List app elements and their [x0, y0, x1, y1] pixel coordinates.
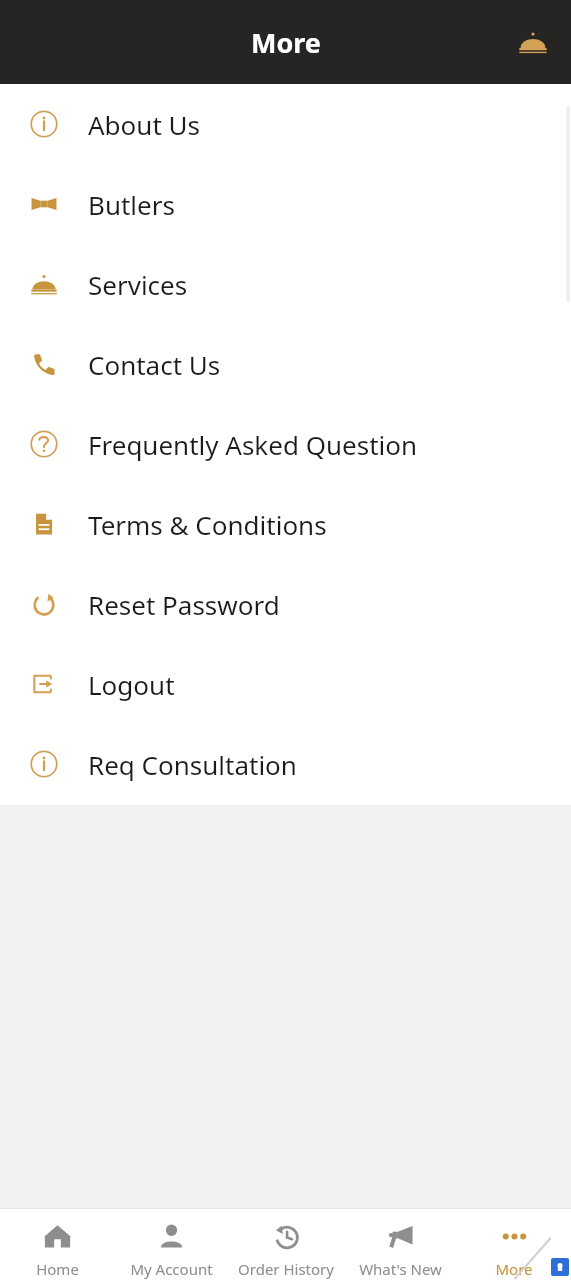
staticText: What's New	[359, 1259, 442, 1279]
button[interactable]: Contact Us	[0, 324, 571, 404]
button[interactable]: About Us	[0, 84, 571, 164]
staticText: Terms & Conditions	[88, 507, 327, 542]
staticText: More	[495, 1259, 533, 1279]
staticText: Frequently Asked Question	[88, 427, 418, 462]
button[interactable]: Req Consultation	[0, 724, 571, 804]
button[interactable]: Order History	[229, 1208, 343, 1280]
button[interactable]: Services	[509, 18, 557, 66]
staticText: About Us	[88, 107, 201, 142]
staticText: Contact Us	[88, 347, 221, 382]
staticText: My Account	[130, 1259, 213, 1279]
button[interactable]: Reset Password	[0, 564, 571, 644]
staticText: Reset Password	[88, 587, 280, 622]
button[interactable]: What's New	[343, 1208, 457, 1280]
staticText: More	[251, 24, 321, 61]
staticText: Req Consultation	[88, 747, 297, 782]
staticText: Logout	[88, 667, 175, 702]
button[interactable]: Butlers	[0, 164, 571, 244]
button[interactable]: More	[457, 1208, 571, 1280]
staticText: Order History	[238, 1259, 334, 1279]
button[interactable]: My Account	[114, 1208, 228, 1280]
staticText: Home	[36, 1259, 79, 1279]
button[interactable]: Frequently Asked Question	[0, 404, 571, 484]
button[interactable]: Logout	[0, 644, 571, 724]
staticText: Services	[88, 267, 188, 302]
button[interactable]: Home	[0, 1208, 114, 1280]
button[interactable]: Terms & Conditions	[0, 484, 571, 564]
button[interactable]: Services	[0, 244, 571, 324]
staticText: Butlers	[88, 187, 175, 222]
